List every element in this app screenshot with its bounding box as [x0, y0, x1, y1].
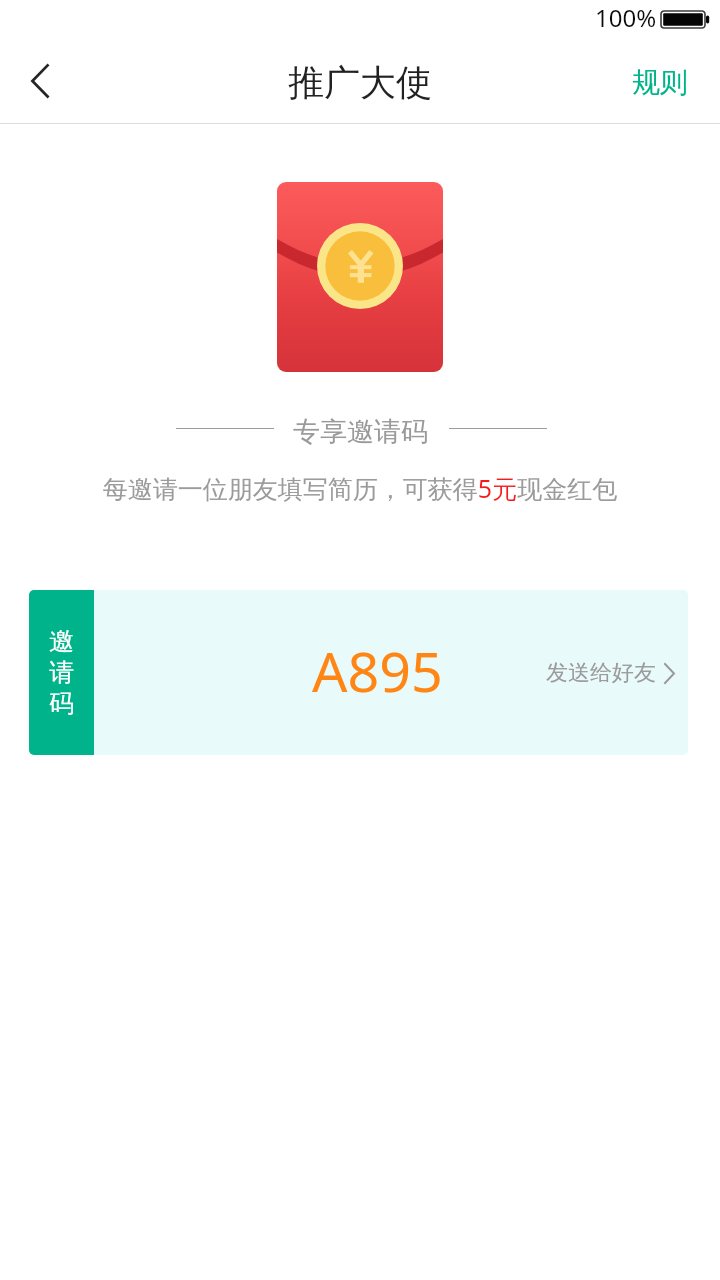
- staticText: 100%: [595, 1, 657, 34]
- staticText: 规则: [632, 65, 688, 100]
- staticText: 推广大使: [288, 60, 432, 105]
- button[interactable]: 发送给好友: [528, 637, 688, 709]
- button[interactable]: Back: [4, 46, 76, 116]
- staticText: 每邀请一位朋友填写简历，可获得5元现金红包: [0, 471, 720, 505]
- staticText: 邀: [49, 626, 74, 657]
- staticText: 专享邀请码: [293, 415, 428, 449]
- staticText: 发送给好友: [546, 659, 656, 687]
- staticText: 请: [49, 657, 74, 688]
- button[interactable]: 邀: [29, 590, 688, 755]
- button[interactable]: 规则: [608, 55, 720, 110]
- staticText: 码: [49, 688, 74, 719]
- staticText: A895: [312, 633, 443, 709]
